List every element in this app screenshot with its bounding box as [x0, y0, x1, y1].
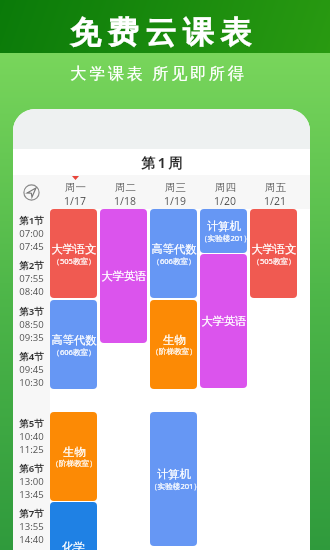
- button[interactable]: 第1周: [13, 149, 310, 175]
- staticText: 第7节: [19, 507, 44, 520]
- button[interactable]: 大学语文: [250, 209, 297, 298]
- staticText: 11:25: [19, 443, 44, 456]
- button[interactable]: 大学英语: [200, 254, 247, 388]
- staticText: 07:45: [19, 240, 44, 253]
- button[interactable]: Locate today: [23, 184, 40, 201]
- staticText: 10:30: [19, 376, 44, 389]
- staticText: 第5节: [19, 417, 44, 430]
- staticText: 1/19: [164, 194, 186, 208]
- staticText: （实验楼201）: [150, 481, 197, 491]
- staticText: 09:35: [19, 331, 44, 344]
- staticText: 周一: [65, 181, 86, 194]
- staticText: 第3节: [19, 305, 44, 318]
- button[interactable]: 计算机: [150, 412, 197, 546]
- staticText: 第6节: [19, 462, 44, 475]
- button[interactable]: 周四: [200, 175, 250, 209]
- staticText: （阶梯教室）: [151, 347, 197, 357]
- staticText: 免费云课表: [70, 13, 258, 52]
- button[interactable]: 周一: [50, 175, 100, 209]
- button[interactable]: 生物: [50, 412, 97, 501]
- button[interactable]: 计算机: [200, 209, 247, 253]
- staticText: 第1节: [19, 214, 44, 227]
- staticText: 13:00: [19, 475, 44, 488]
- staticText: 生物: [163, 333, 186, 347]
- staticText: 1/20: [214, 194, 236, 208]
- button[interactable]: 周二: [100, 175, 150, 209]
- staticText: 07:55: [19, 272, 44, 285]
- staticText: 08:40: [19, 285, 44, 298]
- button[interactable]: 周五: [250, 175, 300, 209]
- button[interactable]: 大学英语: [100, 209, 147, 343]
- staticText: 化学: [62, 540, 85, 550]
- button[interactable]: 周三: [150, 175, 200, 209]
- staticText: 大学语文: [51, 242, 97, 256]
- staticText: 周五: [265, 181, 286, 194]
- staticText: 第4节: [19, 350, 44, 363]
- button[interactable]: 大学语文: [50, 209, 97, 298]
- button[interactable]: 高等代数: [50, 300, 97, 389]
- staticText: 1/18: [114, 194, 136, 208]
- staticText: 周四: [215, 181, 236, 194]
- button[interactable]: 高等代数: [150, 209, 197, 298]
- staticText: 10:40: [19, 430, 44, 443]
- staticText: 大学语文: [251, 242, 297, 256]
- staticText: 第2节: [19, 259, 44, 272]
- staticText: 周三: [165, 181, 186, 194]
- staticText: 生物: [63, 445, 86, 459]
- button[interactable]: 生物: [150, 300, 197, 389]
- staticText: 计算机: [157, 467, 191, 481]
- staticText: 1/21: [264, 194, 286, 208]
- staticText: 高等代数: [151, 242, 197, 256]
- staticText: （606教室）: [152, 256, 196, 266]
- staticText: 大学英语: [101, 269, 147, 283]
- staticText: 高等代数: [51, 333, 97, 347]
- staticText: 计算机: [207, 219, 241, 233]
- staticText: 1/17: [64, 194, 86, 208]
- staticText: 13:55: [19, 520, 44, 533]
- staticText: （505教室）: [252, 256, 296, 266]
- staticText: 大学课表 所见即所得: [70, 62, 247, 84]
- staticText: （实验楼201）: [200, 233, 247, 243]
- staticText: 14:40: [19, 533, 44, 546]
- staticText: （606教室）: [52, 347, 96, 357]
- staticText: 13:45: [19, 488, 44, 501]
- button[interactable]: 化学: [50, 502, 97, 550]
- staticText: 第1周: [141, 153, 185, 172]
- staticText: 07:00: [19, 227, 44, 240]
- staticText: （阶梯教室）: [51, 459, 97, 469]
- staticText: 周二: [115, 181, 136, 194]
- staticText: （505教室）: [52, 256, 96, 266]
- staticText: 大学英语: [201, 314, 247, 328]
- staticText: 08:50: [19, 318, 44, 331]
- staticText: 09:45: [19, 363, 44, 376]
